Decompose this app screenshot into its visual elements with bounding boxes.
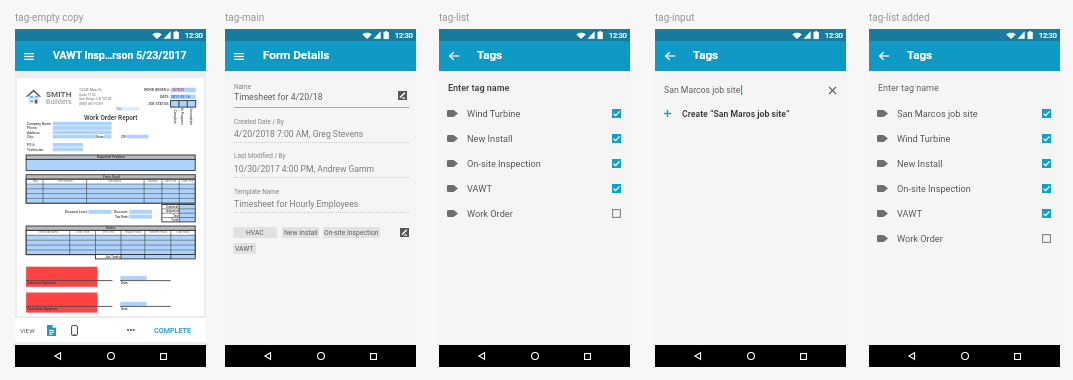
- staticText: In Progress: [180, 108, 184, 126]
- button[interactable]: Back: [49, 347, 67, 365]
- button[interactable]: New Install: [869, 151, 1060, 176]
- staticText: 12:30: [395, 31, 413, 39]
- staticText: (800) 867-5309: [79, 102, 103, 106]
- button[interactable]: Navigate up: [445, 47, 463, 65]
- staticText: Incomplete: [188, 108, 192, 125]
- button[interactable]: Mobile view: [69, 323, 79, 337]
- staticText: Reported Problem: [97, 155, 125, 159]
- button[interactable]: Work Order: [439, 201, 630, 226]
- staticText: Overtime Hours: [149, 231, 168, 234]
- staticText: State:: [96, 135, 105, 139]
- staticText: 12:30: [609, 31, 627, 39]
- staticText: WORK ORDER #:: [144, 88, 170, 92]
- button[interactable]: Wind Turbine: [439, 101, 630, 126]
- button[interactable]: VAWT: [233, 243, 256, 254]
- staticText: San Marcos job site: [664, 85, 741, 95]
- staticText: 2017-07-14: [171, 95, 190, 99]
- button[interactable]: Home: [526, 347, 544, 365]
- staticText: VAWT: [467, 183, 492, 194]
- button[interactable]: Open navigation menu: [20, 47, 38, 65]
- button[interactable]: On-site Inspection: [323, 227, 380, 238]
- staticText: Enter tag name: [878, 83, 939, 94]
- staticText: Part Number: [58, 180, 73, 183]
- button[interactable]: San Marcos job site: [869, 101, 1060, 126]
- staticText: Last Modified / By: [234, 152, 286, 160]
- staticText: tag-list: [439, 12, 470, 24]
- button[interactable]: Navigate up: [875, 47, 893, 65]
- staticText: New Install: [467, 133, 513, 144]
- staticText: 167039: [172, 88, 185, 92]
- staticText: ZIP:: [121, 135, 128, 139]
- button[interactable]: Create “San Maros job site”: [664, 105, 838, 122]
- staticText: 4/20/2018 7:00 AM, Greg Stevens: [234, 129, 364, 139]
- staticText: VAWT Insp…rson 5/23/2017: [53, 49, 187, 61]
- staticText: Complete: [172, 109, 176, 124]
- button[interactable]: Edit: [398, 91, 407, 100]
- staticText: Regular Hours: [125, 231, 142, 234]
- staticText: DATE:: [160, 95, 170, 99]
- staticText: Start Time: [77, 231, 90, 234]
- button[interactable]: VAWT: [869, 201, 1060, 226]
- staticText: Created Date / By: [234, 118, 284, 126]
- staticText: tag-empty copy: [15, 12, 84, 24]
- staticText: Adjusted: [166, 209, 179, 213]
- staticText: Company Name:: [27, 122, 52, 126]
- button[interactable]: Back: [473, 347, 491, 365]
- staticText: On-site Inspection: [324, 229, 379, 237]
- button[interactable]: Edit: [400, 228, 409, 237]
- button[interactable]: Home: [956, 347, 974, 365]
- staticText: Date:: [121, 307, 129, 311]
- staticText: Tax Rate:: [115, 215, 129, 219]
- staticText: Address:: [27, 131, 41, 135]
- staticText: Tags: [693, 48, 719, 62]
- button[interactable]: Home: [102, 347, 120, 365]
- staticText: tag-list added: [869, 12, 930, 24]
- button[interactable]: Navigate up: [661, 47, 679, 65]
- button[interactable]: New Install: [439, 126, 630, 151]
- button[interactable]: Recent apps: [154, 347, 172, 365]
- staticText: 12:30: [185, 31, 203, 39]
- button[interactable]: Recent apps: [1008, 347, 1026, 365]
- staticText: On-site Inspection: [467, 158, 541, 169]
- staticText: Suite 1102: [79, 93, 96, 97]
- staticText: End Time: [103, 231, 114, 234]
- staticText: COMPLETE: [154, 326, 192, 334]
- button[interactable]: COMPLETE: [154, 323, 192, 337]
- staticText: Date:: [121, 281, 129, 285]
- button[interactable]: HVAC: [233, 227, 277, 238]
- button[interactable]: Work Order: [869, 226, 1060, 251]
- button[interactable]: Recent apps: [794, 347, 812, 365]
- staticText: Tags: [907, 48, 933, 62]
- button[interactable]: Open navigation menu: [230, 47, 248, 65]
- staticText: 12:30: [1039, 31, 1057, 39]
- staticText: San Diego, CA 92109: [79, 97, 112, 101]
- staticText: Discount Level:: [65, 210, 88, 214]
- staticText: Form Details: [263, 48, 330, 62]
- button[interactable]: VIEW: [20, 323, 35, 337]
- button[interactable]: On-site Inspection: [869, 176, 1060, 201]
- staticText: City:: [27, 135, 34, 139]
- button[interactable]: Wind Turbine: [869, 126, 1060, 151]
- staticText: Builders: [46, 97, 72, 105]
- staticText: 12345 Main St.: [79, 88, 103, 92]
- staticText: Fax:: [117, 107, 123, 110]
- button[interactable]: New Install: [282, 227, 319, 238]
- button[interactable]: Document view: [46, 323, 57, 337]
- button[interactable]: More options: [125, 323, 136, 336]
- staticText: Total Hours: [176, 231, 190, 234]
- button[interactable]: Back: [259, 347, 277, 365]
- staticText: Work Order Report: [84, 114, 138, 122]
- button[interactable]: Recent apps: [578, 347, 596, 365]
- button[interactable]: On-site Inspection: [439, 151, 630, 176]
- button[interactable]: Back: [903, 347, 921, 365]
- staticText: Timesheet for 4/20/18: [234, 92, 323, 102]
- staticText: Technician Signature: [27, 307, 58, 311]
- button[interactable]: VAWT: [439, 176, 630, 201]
- button[interactable]: Home: [742, 347, 760, 365]
- button[interactable]: Clear text: [826, 84, 838, 96]
- button[interactable]: Recent apps: [364, 347, 382, 365]
- staticText: Total: [171, 218, 179, 222]
- button[interactable]: Back: [689, 347, 707, 365]
- button[interactable]: Home: [312, 347, 330, 365]
- staticText: Phone:: [27, 126, 38, 130]
